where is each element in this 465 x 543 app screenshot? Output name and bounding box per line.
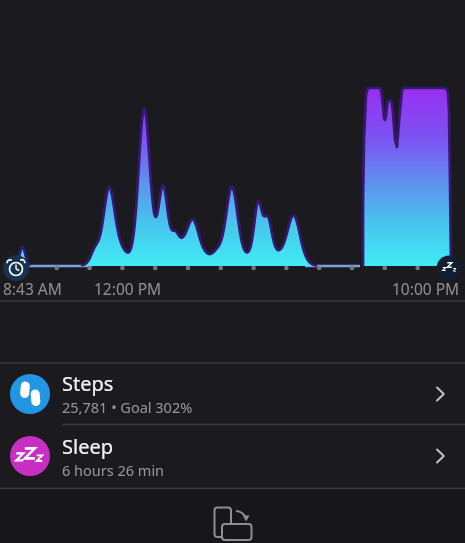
staticText: 25,781 • Goal 302% [62,397,193,417]
staticText: Sleep [62,433,113,460]
button[interactable]: Steps [0,363,465,424]
staticText: 12:00 PM [94,278,162,299]
button[interactable] [206,498,258,543]
button[interactable]: Sleep [0,424,465,488]
staticText: 6 hours 26 min [62,460,165,480]
staticText: 8:43 AM [3,278,62,299]
staticText: Steps [62,370,114,397]
staticText: 10:00 PM [392,278,460,299]
